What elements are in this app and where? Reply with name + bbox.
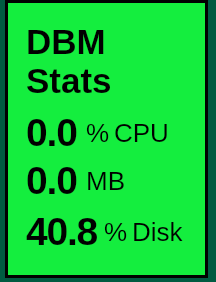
staticText: 0.0 (26, 159, 77, 203)
button[interactable]: 0.0 MB (26, 159, 197, 203)
staticText: DBM (26, 22, 106, 61)
button[interactable]: 0.0 percent CPU (26, 111, 197, 155)
staticText: CPU (114, 118, 169, 147)
staticText: 0.0 (26, 111, 77, 155)
staticText: Disk (132, 217, 183, 246)
staticText: % (86, 118, 110, 147)
button[interactable]: 40.8 percent Disk (26, 210, 197, 254)
staticText: % (104, 217, 128, 246)
staticText: Stats (26, 61, 112, 100)
staticText: MB (86, 166, 125, 195)
staticText: 40.8 (26, 210, 98, 254)
